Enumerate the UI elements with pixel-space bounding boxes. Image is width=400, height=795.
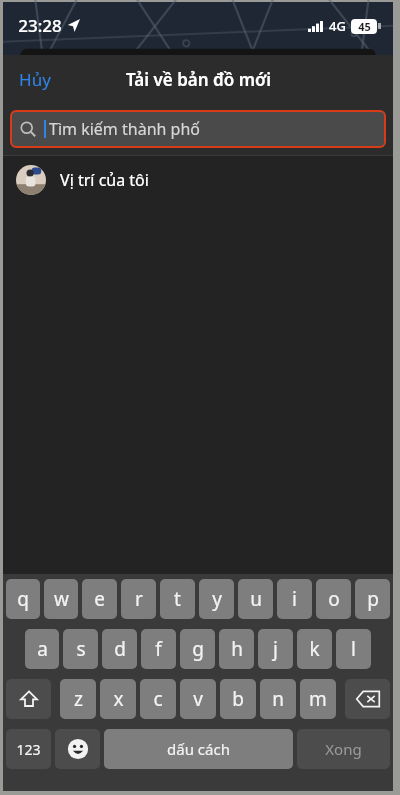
staticText: y (212, 586, 222, 612)
staticText: a (37, 636, 48, 662)
staticText: 4G (329, 17, 346, 35)
button[interactable]: Backspace (345, 679, 390, 719)
button[interactable]: Emoji (55, 729, 100, 769)
button[interactable]: i (277, 579, 312, 619)
staticText: dấu cách (167, 739, 230, 759)
staticText: m (309, 686, 327, 712)
button[interactable]: d (102, 629, 137, 669)
staticText: Xong (325, 739, 362, 759)
button[interactable]: f (141, 629, 176, 669)
button[interactable]: w (44, 579, 78, 619)
button[interactable]: Hủy (3, 60, 67, 99)
staticText: d (114, 636, 126, 662)
button[interactable]: dấu cách (104, 729, 293, 769)
staticText: k (309, 636, 320, 662)
button[interactable]: Shift (6, 679, 51, 719)
staticText: f (155, 636, 162, 662)
staticText: r (135, 586, 143, 612)
button[interactable]: z (60, 679, 96, 719)
staticText: e (94, 586, 105, 612)
button[interactable]: Vị trí của tôi (3, 156, 393, 204)
button[interactable]: Xong (297, 729, 390, 769)
button[interactable]: m (300, 679, 336, 719)
staticText: g (192, 636, 204, 662)
button[interactable]: l (336, 629, 371, 669)
button[interactable]: y (199, 579, 234, 619)
staticText: o (328, 586, 340, 612)
staticText: i (292, 586, 297, 612)
button[interactable]: e (82, 579, 117, 619)
staticText: t (174, 586, 181, 612)
staticText: Tải về bản đồ mới (126, 68, 271, 91)
staticText: x (113, 686, 124, 712)
staticText: s (76, 636, 86, 662)
staticText: 123 (16, 740, 41, 759)
staticText: n (272, 686, 284, 712)
staticText: Hủy (19, 68, 51, 91)
staticText: b (232, 686, 244, 712)
staticText: w (54, 586, 69, 612)
button[interactable]: u (238, 579, 273, 619)
button[interactable]: x (100, 679, 136, 719)
button[interactable]: Tìm kiếm thành phố (10, 110, 386, 148)
button[interactable]: g (180, 629, 215, 669)
staticText: p (367, 586, 379, 612)
button[interactable]: b (220, 679, 256, 719)
staticText: z (74, 686, 83, 712)
button[interactable]: n (260, 679, 296, 719)
staticText: h (231, 636, 243, 662)
button[interactable]: 123 (6, 729, 51, 769)
button[interactable]: p (355, 579, 390, 619)
button[interactable]: t (160, 579, 195, 619)
staticText: l (351, 636, 356, 662)
button[interactable]: h (219, 629, 254, 669)
staticText: c (153, 686, 163, 712)
staticText: Vị trí của tôi (60, 169, 149, 191)
button[interactable]: s (63, 629, 98, 669)
button[interactable]: v (180, 679, 216, 719)
staticText: j (273, 636, 278, 662)
staticText: 45 (358, 19, 371, 34)
button[interactable]: j (258, 629, 293, 669)
staticText: 23:28 (18, 14, 62, 37)
button[interactable]: k (297, 629, 332, 669)
button[interactable]: o (316, 579, 351, 619)
button[interactable]: c (140, 679, 176, 719)
button[interactable]: r (121, 579, 156, 619)
staticText: q (17, 586, 29, 612)
staticText: v (193, 686, 203, 712)
button[interactable]: q (6, 579, 40, 619)
staticText: u (250, 586, 262, 612)
button[interactable]: a (25, 629, 59, 669)
staticText: Tìm kiếm thành phố (49, 118, 200, 140)
